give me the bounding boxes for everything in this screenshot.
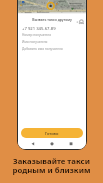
button[interactable]: Готово bbox=[21, 128, 83, 138]
staticText: Номер получателя bbox=[22, 33, 52, 37]
staticText: Вызвать такси другому bbox=[22, 17, 82, 22]
staticText: Добавить имя получателя bbox=[22, 47, 63, 51]
staticText: Готово bbox=[45, 131, 59, 136]
staticText: +7 921 345-67-89 bbox=[22, 26, 56, 32]
staticText: Имя получателя bbox=[22, 40, 48, 44]
staticText: Заказывайте такси родным и близким bbox=[0, 156, 103, 176]
button[interactable]: Contacts bbox=[77, 19, 85, 27]
